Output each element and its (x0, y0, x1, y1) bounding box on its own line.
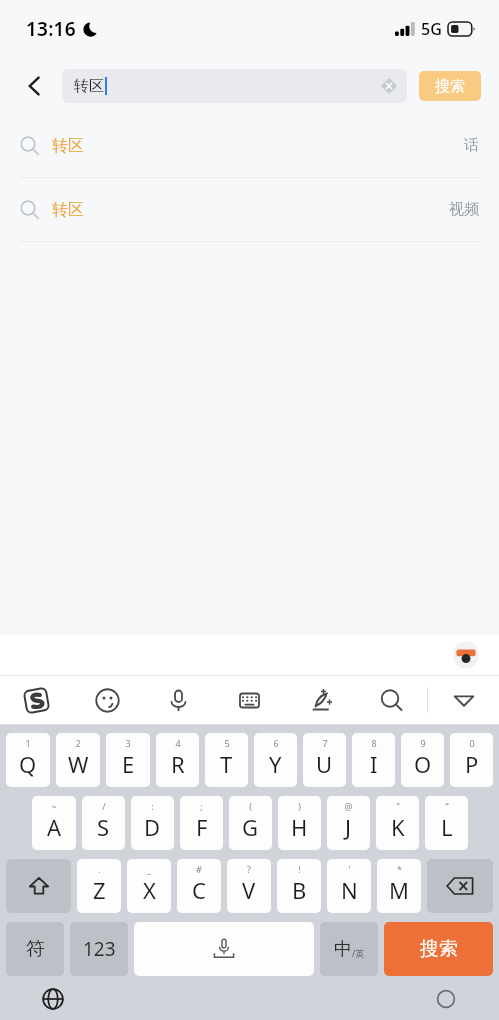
button[interactable]: Hide keyboard (428, 676, 499, 724)
staticText: ? (247, 863, 251, 875)
staticText: ! (298, 863, 301, 875)
button[interactable]: 9 (401, 733, 444, 787)
button[interactable]: ( (229, 796, 272, 850)
button[interactable]: Search (356, 676, 427, 724)
button[interactable]: 符 (6, 922, 64, 976)
staticText: 搜索 (420, 937, 458, 961)
staticText: _ (147, 863, 151, 875)
button[interactable]: Emoji (72, 676, 143, 724)
staticText: 3 (125, 737, 131, 749)
staticText: P (465, 749, 479, 779)
staticText: 8 (371, 737, 377, 749)
staticText: H (291, 812, 308, 842)
staticText: J (345, 812, 352, 842)
button[interactable]: 中 (320, 922, 378, 976)
staticText: M (389, 875, 409, 905)
staticText: ( (249, 800, 252, 812)
button[interactable]: @ (327, 796, 370, 850)
staticText: Q (19, 749, 37, 779)
staticText: / (102, 800, 106, 812)
staticText: Y (269, 749, 282, 779)
staticText: ~ (51, 800, 57, 812)
button[interactable]: 3 (106, 733, 150, 787)
button[interactable]: / (82, 796, 125, 850)
button[interactable]: 5 (205, 733, 248, 787)
button[interactable]: Handwriting (285, 676, 356, 724)
button[interactable]: Settings (433, 986, 459, 1012)
button[interactable]: " (376, 796, 419, 850)
staticText: 6 (273, 737, 279, 749)
button[interactable]: 转区 (62, 69, 407, 103)
button[interactable]: * (377, 859, 421, 913)
staticText: ) (298, 800, 301, 812)
staticText: ; (200, 800, 203, 812)
button[interactable]: _ (127, 859, 171, 913)
staticText: 9 (420, 737, 426, 749)
staticText: X (143, 875, 156, 905)
staticText: N (341, 875, 358, 905)
staticText: A (47, 812, 62, 842)
staticText: 1 (25, 737, 31, 749)
staticText: /英 (352, 947, 365, 959)
staticText: Z (93, 875, 106, 905)
button[interactable]: 123 (70, 922, 128, 976)
button[interactable]: Clear (379, 76, 399, 96)
staticText: T (220, 749, 233, 779)
staticText: 4 (175, 737, 181, 749)
button[interactable]: Language (40, 986, 66, 1012)
button[interactable]: Keyboard (214, 676, 285, 724)
button[interactable]: 7 (303, 733, 346, 787)
button[interactable]: Voice input (143, 676, 214, 724)
staticText: E (122, 749, 135, 779)
staticText: 搜索 (435, 77, 465, 96)
button[interactable]: 搜索 (384, 922, 493, 976)
button[interactable]: ” (425, 796, 468, 850)
staticText: 7 (322, 737, 328, 749)
button[interactable]: Space (134, 922, 314, 976)
button[interactable]: : (131, 796, 174, 850)
staticText: 中 (334, 938, 352, 961)
staticText: V (242, 875, 256, 905)
button[interactable]: ' (327, 859, 371, 913)
button[interactable]: ) (278, 796, 321, 850)
button[interactable]: ~ (32, 796, 76, 850)
staticText: O (414, 749, 432, 779)
staticText: ” (445, 800, 449, 812)
staticText: 转区 (52, 200, 84, 220)
button[interactable]: 8 (352, 733, 395, 787)
button[interactable]: Back (18, 69, 52, 103)
staticText: 转区 (52, 136, 84, 156)
staticText: ' (348, 863, 351, 875)
staticText: F (196, 812, 208, 842)
button[interactable]: 2 (56, 733, 100, 787)
button[interactable]: 4 (156, 733, 199, 787)
button[interactable]: Sogou (0, 676, 72, 724)
button[interactable]: 搜索 (419, 71, 481, 101)
staticText: I (370, 749, 378, 779)
button[interactable]: 6 (254, 733, 297, 787)
staticText: 2 (75, 737, 81, 749)
button[interactable]: Shift (6, 859, 71, 913)
staticText: # (196, 863, 202, 875)
staticText: K (391, 812, 405, 842)
button[interactable]: 1 (6, 733, 50, 787)
button[interactable]: ? (227, 859, 271, 913)
button[interactable]: ; (180, 796, 223, 850)
staticText: * (397, 863, 402, 875)
button[interactable]: # (177, 859, 221, 913)
staticText: D (144, 812, 161, 842)
button[interactable]: . (77, 859, 121, 913)
staticText: 0 (469, 737, 475, 749)
staticText: 转区 (74, 77, 104, 96)
staticText: 123 (83, 936, 116, 962)
button[interactable]: Assistant (451, 640, 481, 670)
button[interactable]: 转区 (0, 178, 499, 242)
staticText: B (292, 875, 307, 905)
button[interactable]: 0 (450, 733, 493, 787)
button[interactable]: Backspace (427, 859, 493, 913)
staticText: @ (344, 800, 353, 812)
button[interactable]: ! (277, 859, 321, 913)
staticText: R (171, 749, 185, 779)
button[interactable]: 转区 (0, 114, 499, 178)
staticText: " (396, 800, 400, 812)
